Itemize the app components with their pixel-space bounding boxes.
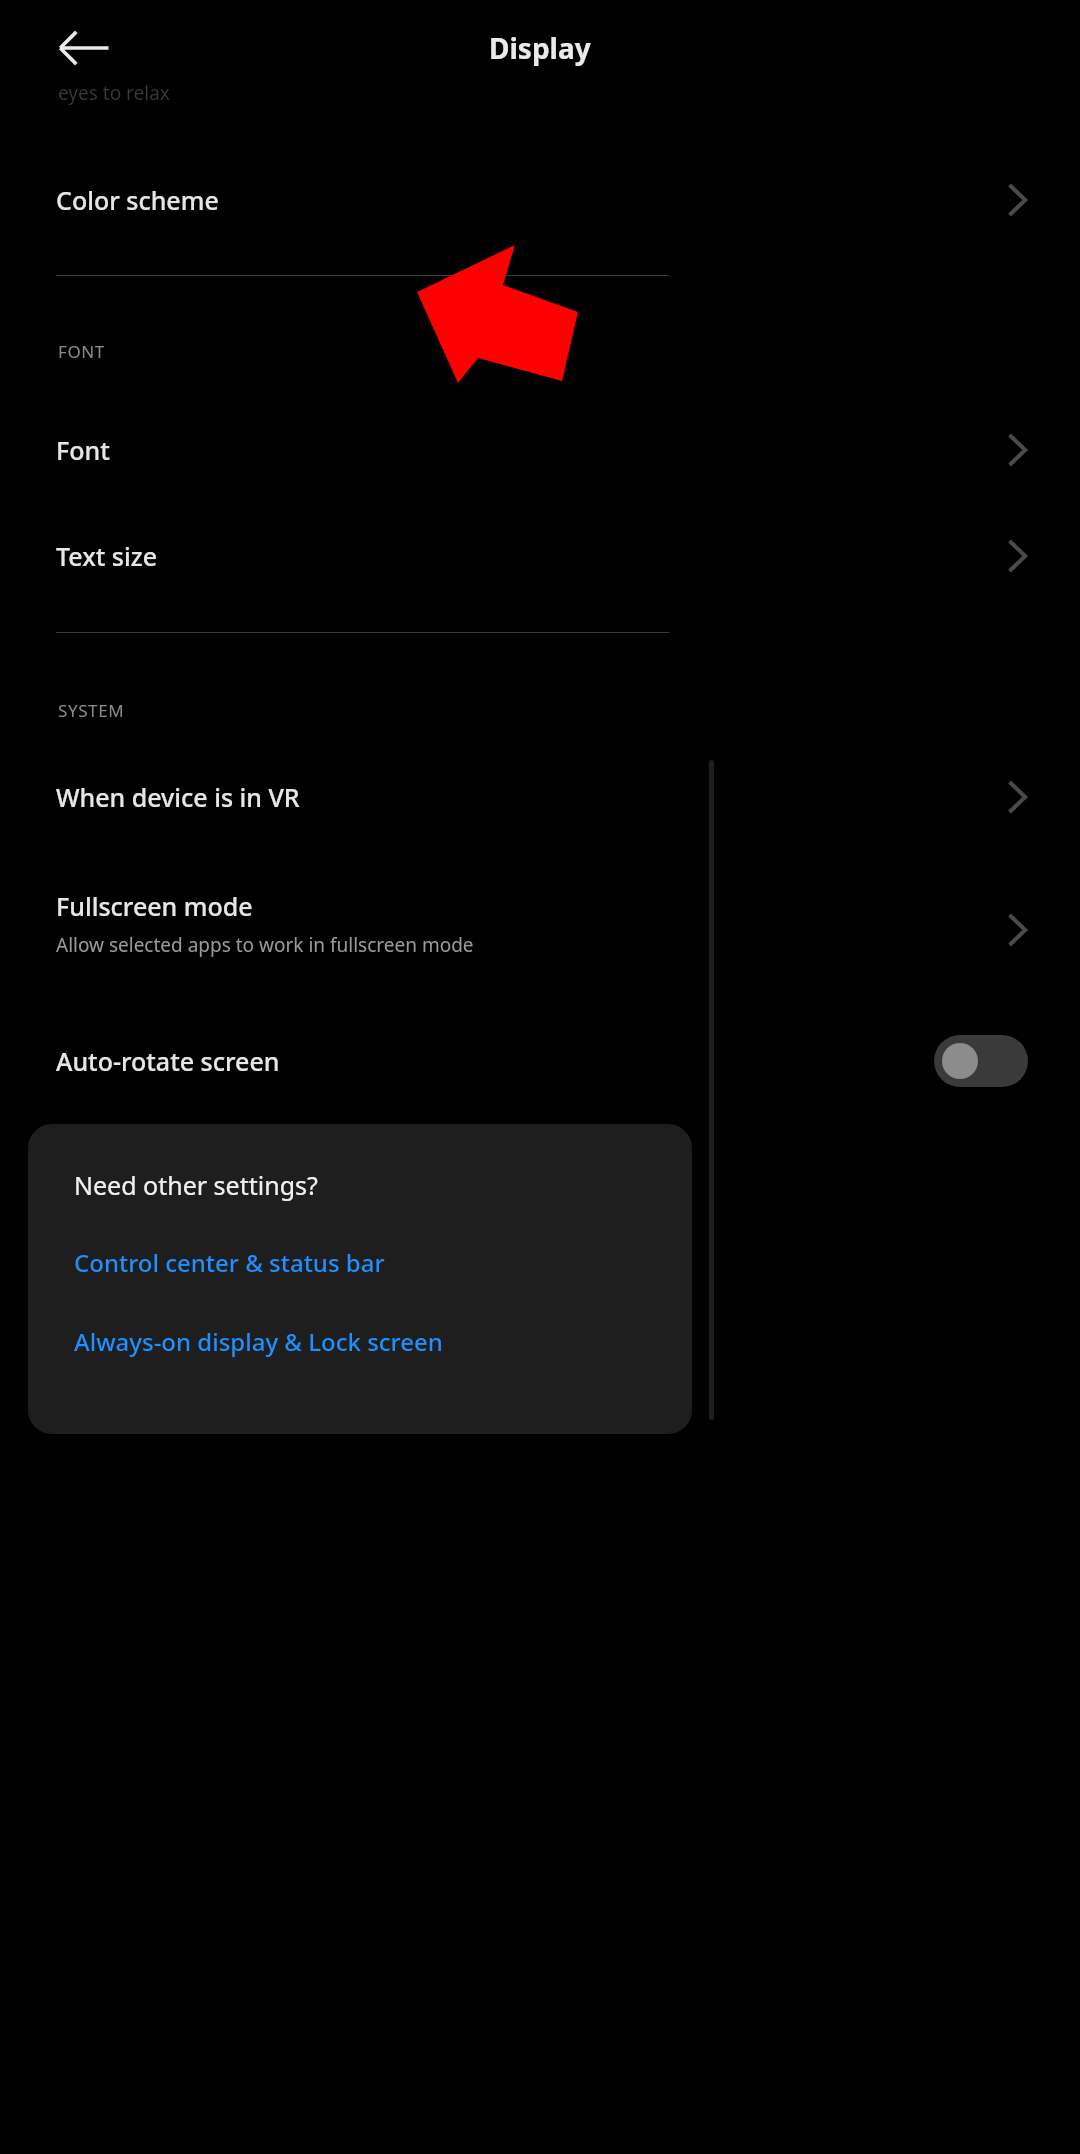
button[interactable]: When device is in VR bbox=[0, 742, 1080, 852]
staticText: Always-on display & Lock screen bbox=[74, 1325, 443, 1358]
staticText: eyes to relax bbox=[58, 80, 170, 106]
button[interactable]: Control center & status bar bbox=[74, 1246, 385, 1279]
staticText: Text size bbox=[56, 539, 157, 573]
staticText: Display bbox=[489, 29, 591, 67]
staticText: Font bbox=[56, 433, 110, 467]
staticText: When device is in VR bbox=[56, 780, 300, 814]
button[interactable]: Font bbox=[0, 400, 1080, 500]
staticText: Color scheme bbox=[56, 183, 219, 217]
button[interactable]: Auto-rotate screen toggle bbox=[934, 1035, 1028, 1087]
button[interactable]: Color scheme bbox=[0, 150, 1080, 250]
button[interactable]: Back bbox=[54, 17, 116, 79]
button[interactable]: Fullscreen mode bbox=[0, 860, 1080, 986]
staticText: Need other settings? bbox=[74, 1168, 318, 1202]
staticText: Control center & status bar bbox=[74, 1246, 385, 1279]
button[interactable]: Text size bbox=[0, 506, 1080, 606]
staticText: Auto-rotate screen bbox=[56, 1044, 280, 1078]
staticText: Fullscreen mode bbox=[56, 889, 253, 923]
staticText: FONT bbox=[58, 340, 105, 363]
staticText: Allow selected apps to work in fullscree… bbox=[56, 932, 474, 958]
staticText: SYSTEM bbox=[58, 699, 125, 722]
button[interactable]: Auto-rotate screen bbox=[0, 1006, 1080, 1116]
button[interactable]: Always-on display & Lock screen bbox=[74, 1325, 443, 1358]
